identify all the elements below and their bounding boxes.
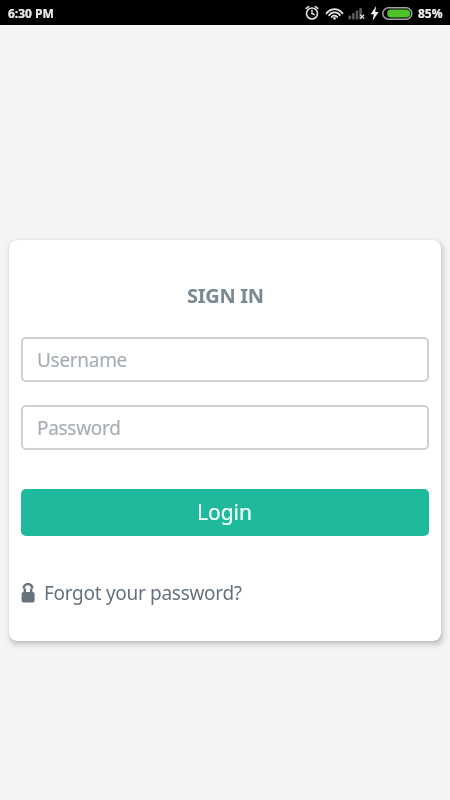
button[interactable]: Forgot your password?	[21, 580, 242, 606]
staticText: Login	[197, 498, 253, 527]
staticText: Password	[37, 415, 121, 441]
staticText: 6:30 PM	[8, 5, 54, 21]
staticText: 85%	[418, 5, 443, 21]
button[interactable]: Password	[21, 405, 429, 450]
staticText: Username	[37, 347, 128, 373]
staticText: Forgot your password?	[44, 580, 242, 606]
button[interactable]: Login	[21, 489, 429, 536]
button[interactable]: Username	[21, 337, 429, 382]
staticText: SIGN IN	[187, 282, 264, 309]
